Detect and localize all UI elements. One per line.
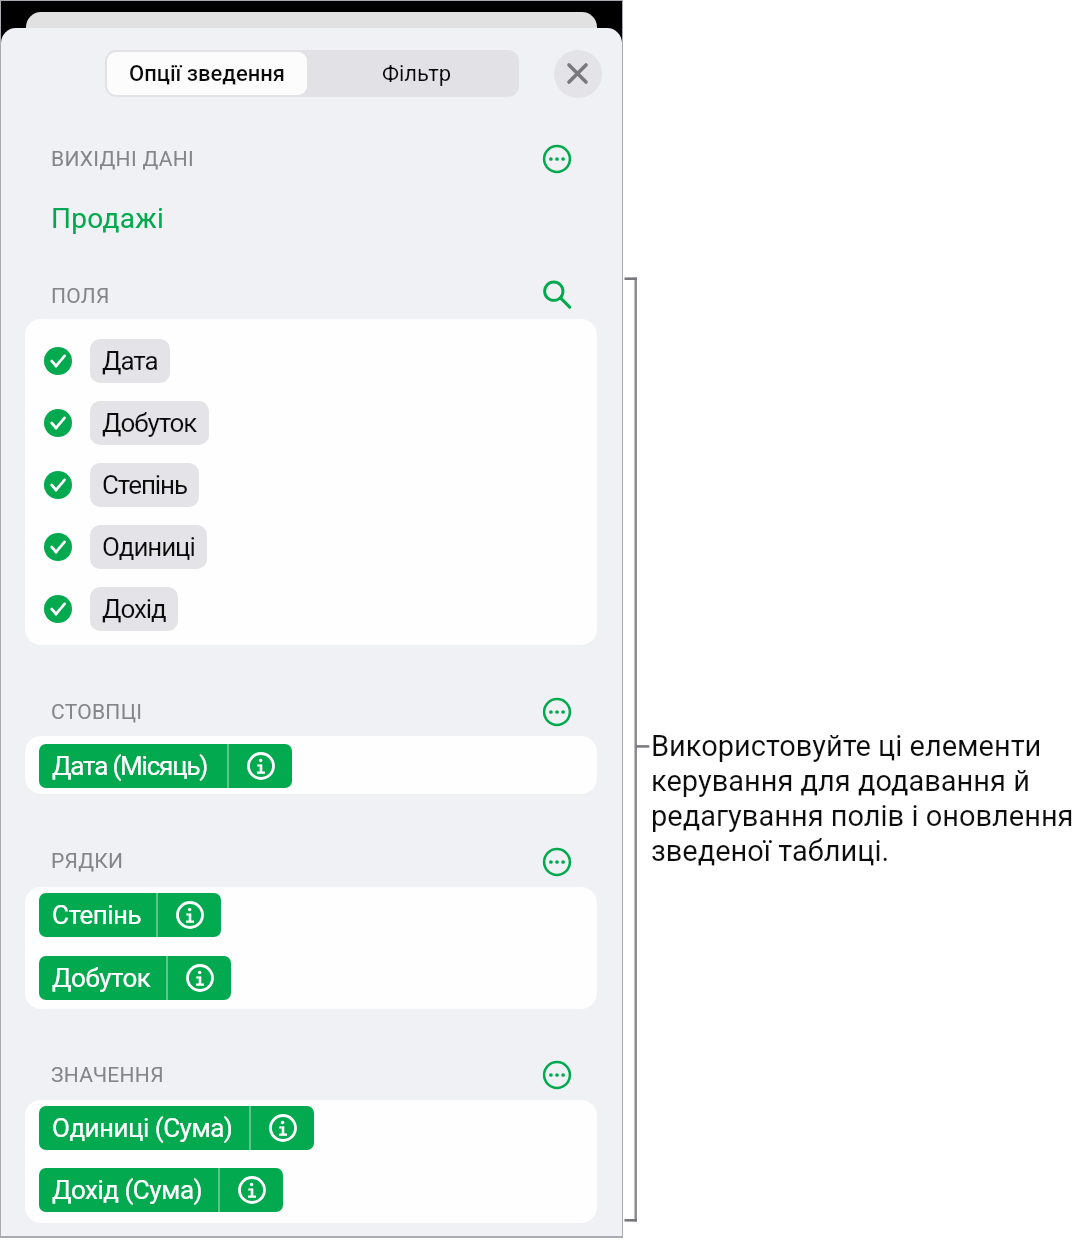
button[interactable]: Search (535, 271, 579, 315)
staticText: Добуток (102, 408, 197, 438)
staticText: ЗНАЧЕННЯ (51, 1063, 164, 1088)
staticText: РЯДКИ (51, 849, 124, 874)
button[interactable]: Добуток (90, 401, 209, 445)
button[interactable]: More options (535, 690, 579, 734)
staticText: Степінь (52, 900, 142, 930)
button[interactable]: Дата (90, 339, 170, 383)
staticText: Фільтр (382, 61, 452, 87)
staticText: Одиниці (102, 532, 195, 562)
staticText: Дата (102, 346, 158, 376)
staticText: ПОЛЯ (51, 284, 110, 309)
staticText: ВИХІДНІ ДАНІ (51, 147, 194, 172)
staticText: Дата (Місяць) (52, 751, 208, 781)
button[interactable]: Дохід (90, 587, 178, 631)
button[interactable]: Степінь (39, 893, 221, 937)
button[interactable]: More options (535, 840, 579, 884)
staticText: Дохід (102, 594, 166, 624)
staticText: Використовуйте ці елементи керування для… (651, 729, 1081, 868)
staticText: Степінь (102, 470, 187, 500)
button[interactable]: Фільтр (309, 50, 519, 97)
button[interactable]: Дата (Місяць) (39, 744, 292, 788)
button[interactable]: Продажі (51, 202, 165, 235)
button[interactable]: Опції зведення (107, 52, 307, 95)
staticText: Продажі (51, 202, 165, 235)
staticText: Дохід (Сума) (52, 1175, 203, 1205)
button[interactable]: Степінь (90, 463, 199, 507)
button[interactable]: Добуток (39, 956, 231, 1000)
staticText: Добуток (52, 963, 151, 993)
button[interactable]: More options (535, 137, 579, 181)
button[interactable]: More options (535, 1053, 579, 1097)
button[interactable]: Одиниці (Сума) (39, 1106, 314, 1150)
button[interactable]: Одиниці (90, 525, 207, 569)
staticText: Опції зведення (129, 61, 285, 87)
staticText: СТОВПЦІ (51, 700, 143, 725)
button[interactable]: Дохід (Сума) (39, 1168, 283, 1212)
staticText: Одиниці (Сума) (52, 1113, 233, 1143)
button[interactable]: Close (554, 50, 602, 98)
